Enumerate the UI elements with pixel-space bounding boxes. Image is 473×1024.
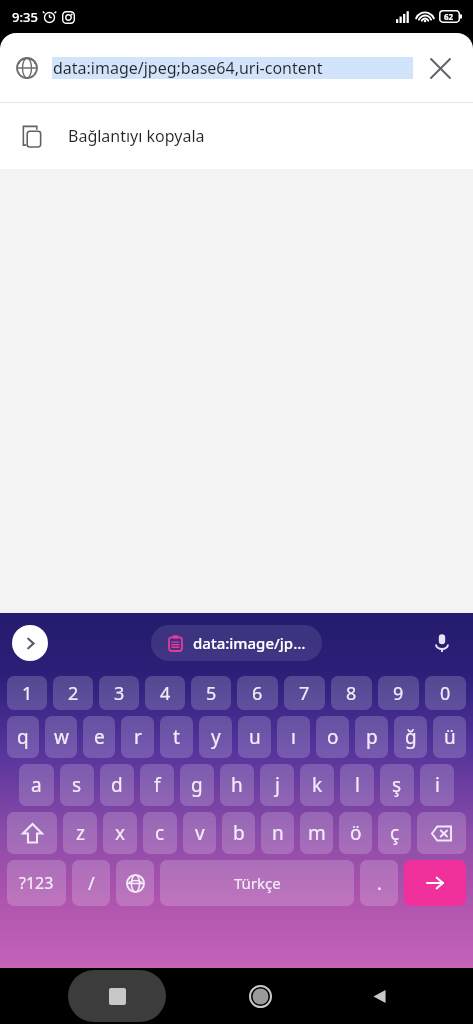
staticText: x [115,820,126,846]
button[interactable]: q [7,716,39,758]
button[interactable]: Enter [404,860,466,906]
staticText: 9 [393,681,404,706]
staticText: s [72,772,82,798]
button[interactable]: ç [378,812,411,854]
button[interactable]: 6 [237,676,278,710]
staticText: Bağlantıyı kopyala [68,125,205,147]
staticText: n [272,820,284,846]
button[interactable]: r [121,716,154,758]
button[interactable]: u [238,716,271,758]
staticText: b [233,820,245,846]
staticText: h [231,772,243,798]
staticText: o [327,724,339,750]
staticText: 8 [346,681,357,706]
button[interactable]: t [160,716,193,758]
staticText: p [366,724,378,750]
other: Site info [16,57,38,79]
button[interactable]: d [100,764,134,806]
button[interactable]: . [360,860,398,906]
staticText: ş [392,772,402,798]
staticText: v [195,820,205,846]
button[interactable]: 2 [53,676,93,710]
staticText: 3 [114,681,125,706]
staticText: y [211,724,221,750]
staticText: data:image/jpeg;base64,uri-content [53,57,323,79]
staticText: e [94,724,105,750]
button[interactable]: g [180,764,214,806]
button[interactable]: y [199,716,232,758]
staticText: a [31,772,42,798]
staticText: 9:35 [12,8,38,26]
button[interactable]: Expand [12,625,48,661]
button[interactable]: Bağlantıyı kopyala [0,103,473,169]
button[interactable]: l [340,764,374,806]
staticText: i [435,772,440,798]
button[interactable]: data:image/jp… [151,625,322,661]
button[interactable]: ?123 [7,860,66,906]
staticText: u [249,724,261,750]
button[interactable]: o [316,716,349,758]
button[interactable]: v [183,812,216,854]
staticText: k [312,772,323,798]
button[interactable]: Home [234,970,286,1022]
button[interactable]: Change language [116,860,154,906]
staticText: ?123 [19,872,54,894]
button[interactable]: s [60,764,94,806]
button[interactable]: f [140,764,174,806]
button[interactable]: 9 [378,676,419,710]
staticText: Türkçe [234,873,281,893]
staticText: f [154,772,161,798]
staticText: ö [350,820,362,846]
button[interactable]: Backspace [417,812,466,854]
button[interactable]: 4 [145,676,185,710]
button[interactable]: n [261,812,294,854]
button[interactable]: k [300,764,334,806]
button[interactable]: ö [339,812,372,854]
staticText: l [355,772,360,798]
button[interactable]: 1 [7,676,47,710]
button[interactable]: 8 [331,676,372,710]
button[interactable]: Recents [68,970,166,1022]
button[interactable]: ş [380,764,414,806]
staticText: t [173,724,180,750]
button[interactable]: a [19,764,54,806]
staticText: d [111,772,123,798]
button[interactable]: e [83,716,115,758]
button[interactable]: j [260,764,294,806]
button[interactable]: x [103,812,137,854]
button[interactable]: ğ [394,716,427,758]
button[interactable]: Clear [423,51,457,85]
button[interactable]: Back [353,970,405,1022]
button[interactable]: i [420,764,454,806]
staticText: 7 [299,681,310,706]
staticText: 4 [160,681,171,706]
button[interactable]: b [222,812,255,854]
button[interactable]: m [300,812,333,854]
staticText: r [134,724,142,750]
button[interactable]: p [355,716,388,758]
staticText: m [308,820,326,846]
button[interactable]: h [220,764,254,806]
staticText: q [17,724,29,750]
button[interactable]: z [63,812,97,854]
button[interactable]: c [143,812,177,854]
button[interactable]: 3 [99,676,139,710]
staticText: 5 [206,681,217,706]
button[interactable]: 0 [425,676,466,710]
staticText: g [191,772,203,798]
button[interactable]: Site info [0,33,473,102]
button[interactable]: 7 [284,676,325,710]
button[interactable]: 5 [191,676,231,710]
staticText: z [76,820,85,846]
button[interactable]: Voice input [425,626,459,660]
button[interactable]: / [72,860,110,906]
staticText: ü [444,724,456,750]
staticText: 2 [68,681,79,706]
button[interactable]: ı [277,716,310,758]
staticText: / [88,871,95,896]
button[interactable]: w [45,716,77,758]
button[interactable]: Türkçe [160,860,354,906]
button[interactable]: ü [433,716,466,758]
staticText: ç [390,820,400,846]
button[interactable]: Shift [7,812,57,854]
